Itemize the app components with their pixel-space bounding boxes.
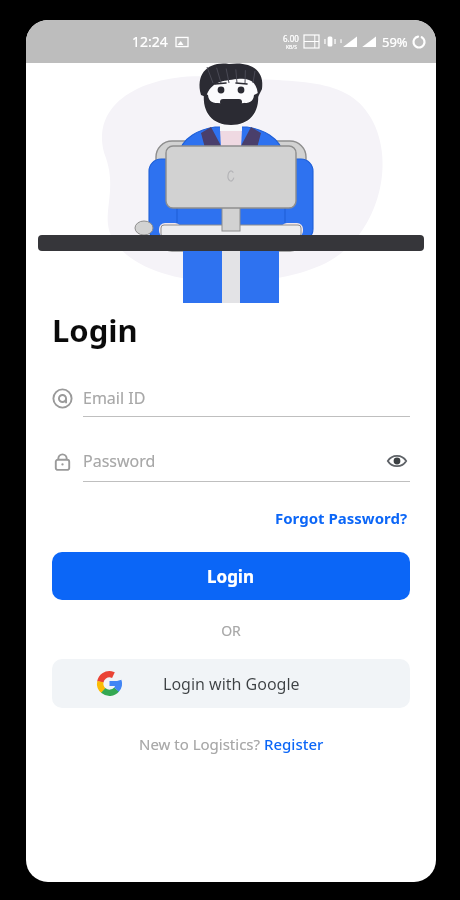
staticText: New to Logistics? Register bbox=[139, 734, 324, 754]
staticText: Login with Google bbox=[163, 673, 300, 695]
button[interactable]: New to Logistics? Register bbox=[135, 730, 328, 758]
staticText: Login bbox=[52, 309, 138, 351]
staticText: OR bbox=[52, 621, 410, 640]
staticText: Password bbox=[83, 450, 384, 472]
staticText: Login bbox=[207, 565, 255, 588]
button[interactable]: Password bbox=[52, 448, 410, 482]
staticText: Forgot Password? bbox=[275, 508, 408, 528]
button[interactable]: Show password bbox=[384, 448, 410, 474]
staticText: KB/S bbox=[286, 44, 297, 51]
button[interactable]: Login with Google bbox=[52, 659, 410, 708]
button[interactable]: Email ID bbox=[52, 387, 410, 417]
staticText: Email ID bbox=[83, 387, 146, 409]
staticText: 12:24 bbox=[132, 32, 168, 51]
staticText: 6.00 bbox=[283, 33, 299, 44]
button[interactable]: Login bbox=[52, 552, 410, 600]
staticText: 59% bbox=[382, 33, 408, 51]
button[interactable]: Forgot Password? bbox=[273, 504, 410, 532]
